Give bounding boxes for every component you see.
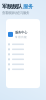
staticText: 服务 xyxy=(23,3,33,10)
staticText: 常用功能 xyxy=(15,35,27,39)
staticText: 军舰舰队 xyxy=(2,3,22,10)
staticText: 服务中心 xyxy=(15,30,27,34)
staticText: 查看最新动态与服务 xyxy=(2,11,29,15)
